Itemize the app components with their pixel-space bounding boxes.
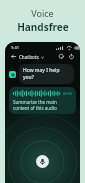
staticText: Chatbots: [19, 54, 39, 60]
button[interactable]: New chat: [58, 53, 65, 60]
button[interactable]: How may I help you?: [19, 64, 74, 84]
staticText: How may I help you?: [23, 67, 70, 81]
button[interactable]: Back: [10, 53, 17, 60]
button[interactable]: 00:06: [9, 87, 76, 114]
staticText: Voice: [31, 7, 54, 19]
button[interactable]: History: [68, 53, 75, 60]
button[interactable]: Chatbots: [19, 54, 44, 60]
button[interactable]: Microphone: [36, 155, 49, 168]
staticText: Handsfree: [17, 20, 69, 34]
staticText: 00:06: [63, 91, 72, 96]
staticText: 9:41: [11, 45, 19, 50]
staticText: Summarize the main content of this audio: [13, 99, 72, 111]
